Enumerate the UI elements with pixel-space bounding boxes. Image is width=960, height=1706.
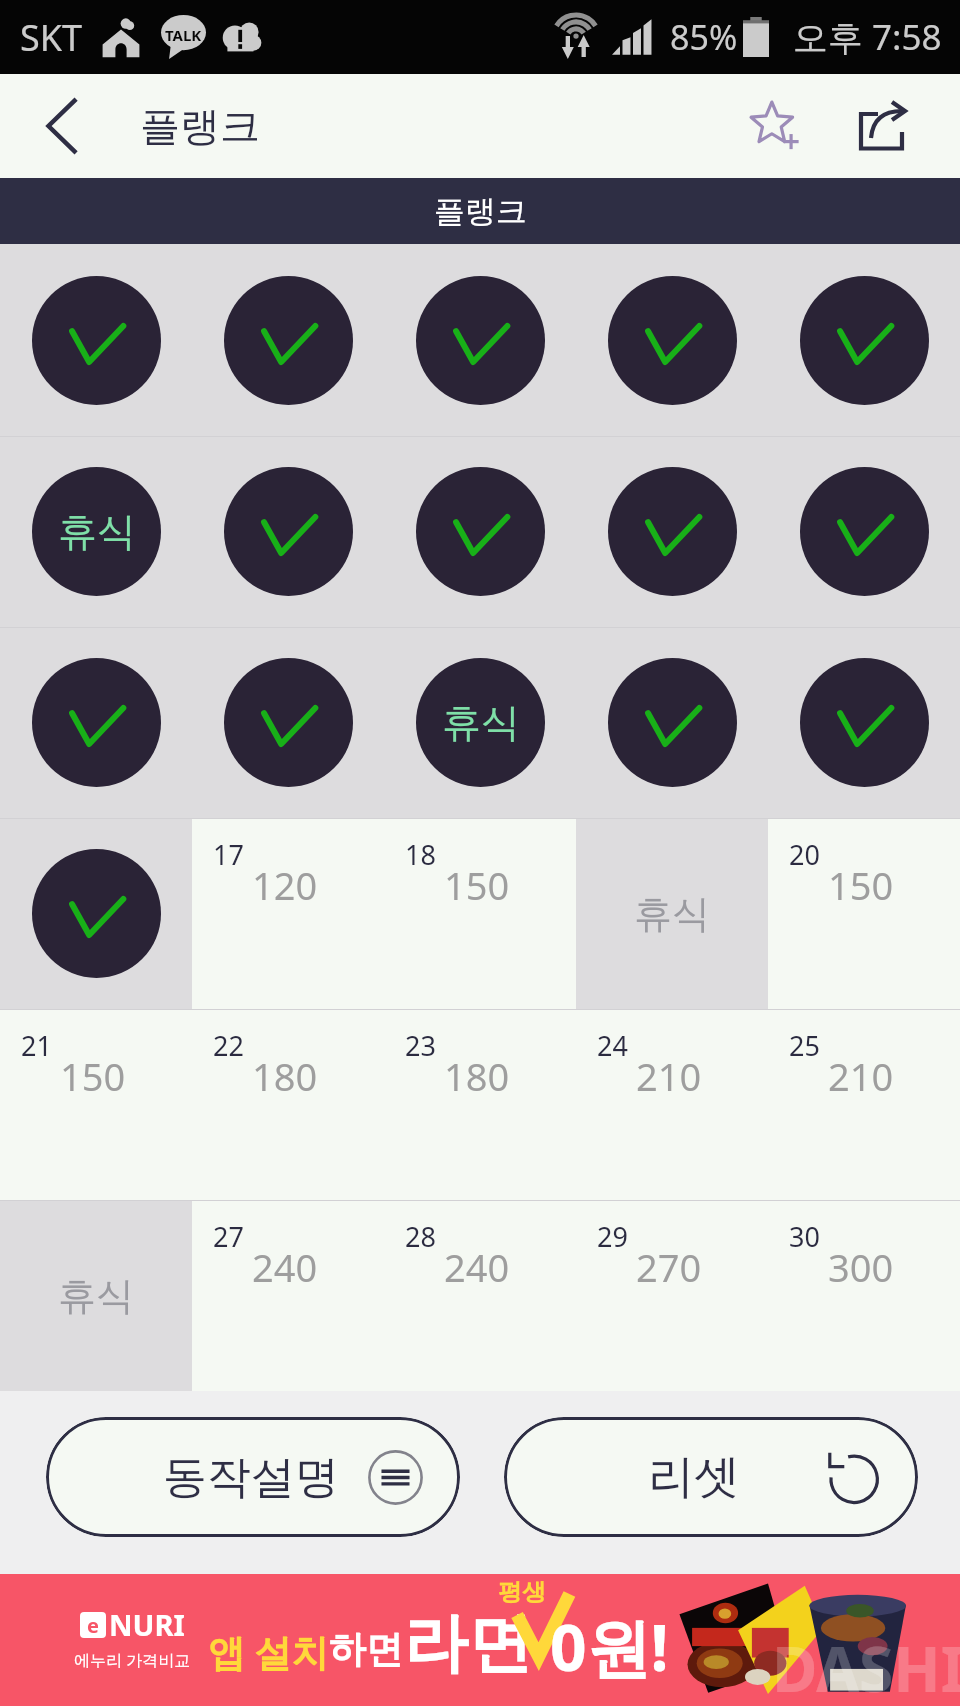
- button[interactable]: [576, 244, 768, 436]
- staticText: 28: [405, 1218, 436, 1255]
- staticText: 평생: [498, 1577, 546, 1607]
- staticText: DASHIN: [772, 1626, 960, 1706]
- staticText: 180: [252, 1050, 318, 1102]
- staticText: 300: [828, 1241, 894, 1293]
- staticText: 23: [405, 1027, 436, 1064]
- button[interactable]: 25: [768, 1009, 960, 1200]
- staticText: TALK: [165, 25, 202, 45]
- button[interactable]: 27: [192, 1200, 384, 1391]
- button[interactable]: e: [0, 1574, 960, 1706]
- button[interactable]: 휴식: [384, 627, 576, 818]
- button[interactable]: 21: [0, 1009, 192, 1200]
- button[interactable]: [384, 244, 576, 436]
- button[interactable]: [0, 627, 192, 818]
- button[interactable]: [768, 244, 960, 436]
- staticText: 210: [636, 1050, 702, 1102]
- staticText: 17: [213, 836, 244, 873]
- button[interactable]: 리셋: [504, 1417, 918, 1537]
- button[interactable]: Share: [831, 74, 935, 178]
- staticText: 하면: [329, 1626, 403, 1673]
- staticText: 240: [444, 1241, 510, 1293]
- button[interactable]: [0, 818, 192, 1009]
- button[interactable]: 20: [768, 818, 960, 1009]
- button[interactable]: 23: [384, 1009, 576, 1200]
- button[interactable]: [576, 436, 768, 627]
- button[interactable]: [0, 244, 192, 436]
- staticText: 120: [252, 859, 318, 911]
- staticText: 라면: [404, 1603, 532, 1684]
- staticText: 210: [828, 1050, 894, 1102]
- staticText: 22: [213, 1027, 244, 1064]
- button[interactable]: 22: [192, 1009, 384, 1200]
- staticText: 20: [789, 836, 820, 873]
- staticText: 30: [789, 1218, 820, 1255]
- staticText: 휴식: [58, 507, 136, 556]
- button[interactable]: 휴식: [576, 818, 768, 1009]
- staticText: 21: [21, 1027, 52, 1064]
- staticText: SKT: [20, 13, 83, 62]
- staticText: 에누리 가격비교: [74, 1649, 191, 1671]
- staticText: 29: [597, 1218, 628, 1255]
- button[interactable]: 휴식: [0, 1200, 192, 1391]
- staticText: 150: [60, 1050, 126, 1102]
- staticText: 85%: [670, 14, 738, 60]
- staticText: 플랭크: [434, 192, 527, 231]
- staticText: 180: [444, 1050, 510, 1102]
- staticText: 240: [252, 1241, 318, 1293]
- staticText: 24: [597, 1027, 628, 1064]
- staticText: 150: [828, 859, 894, 911]
- button[interactable]: [384, 436, 576, 627]
- button[interactable]: 24: [576, 1009, 768, 1200]
- staticText: e: [87, 1612, 99, 1638]
- button[interactable]: 28: [384, 1200, 576, 1391]
- staticText: 앱 설치: [208, 1626, 329, 1677]
- button[interactable]: [192, 244, 384, 436]
- button[interactable]: [768, 627, 960, 818]
- staticText: 리셋: [648, 1448, 740, 1506]
- staticText: 27: [213, 1218, 244, 1255]
- staticText: 150: [444, 859, 510, 911]
- staticText: 0원!: [550, 1603, 669, 1690]
- staticText: 휴식: [442, 698, 520, 747]
- staticText: 플랭크: [140, 101, 260, 151]
- staticText: 휴식: [58, 1272, 134, 1320]
- staticText: 오후 7:58: [793, 13, 942, 61]
- staticText: 25: [789, 1027, 820, 1064]
- button[interactable]: 30: [768, 1200, 960, 1391]
- button[interactable]: [192, 436, 384, 627]
- staticText: 동작설명: [163, 1450, 339, 1505]
- button[interactable]: 휴식: [0, 436, 192, 627]
- button[interactable]: Add to favorites: [721, 74, 831, 178]
- staticText: 18: [405, 836, 436, 873]
- staticText: 휴식: [634, 890, 710, 938]
- button[interactable]: 29: [576, 1200, 768, 1391]
- staticText: NURI: [109, 1605, 185, 1644]
- button[interactable]: 동작설명: [46, 1417, 460, 1537]
- button[interactable]: [192, 627, 384, 818]
- button[interactable]: [768, 436, 960, 627]
- button[interactable]: 18: [384, 818, 576, 1009]
- button[interactable]: 17: [192, 818, 384, 1009]
- button[interactable]: [576, 627, 768, 818]
- button[interactable]: Back: [0, 74, 124, 178]
- staticText: 270: [636, 1241, 702, 1293]
